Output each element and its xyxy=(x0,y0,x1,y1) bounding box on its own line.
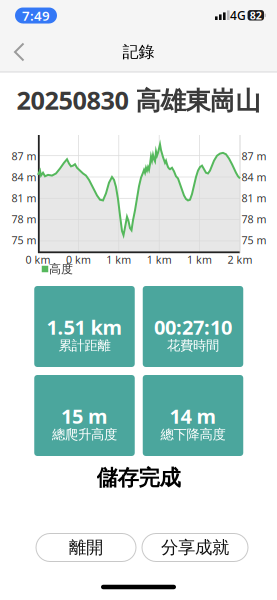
staticText: 2 km xyxy=(227,252,252,267)
button[interactable]: Back xyxy=(7,40,31,64)
staticText: 離開 xyxy=(69,537,103,558)
staticText: 0 km xyxy=(25,252,50,267)
staticText: 78 m xyxy=(11,212,36,226)
button[interactable]: 分享成就 xyxy=(142,533,248,561)
staticText: 4G xyxy=(230,7,246,23)
staticText: 1 km xyxy=(187,252,212,267)
staticText: 1 km xyxy=(147,252,172,267)
staticText: 記錄 xyxy=(122,42,154,62)
staticText: 82 xyxy=(250,8,262,22)
staticText: 1 km xyxy=(106,252,131,267)
staticText: 分享成就 xyxy=(161,537,229,558)
staticText: 87 m xyxy=(241,149,266,163)
button[interactable]: 離開 xyxy=(36,533,136,561)
staticText: 高度 xyxy=(49,262,73,276)
staticText: 00:27:10 xyxy=(154,314,232,340)
staticText: 儲存完成 xyxy=(96,465,180,491)
staticText: 花費時間 xyxy=(167,337,219,354)
staticText: 總爬升高度 xyxy=(52,426,117,443)
staticText: 15 m xyxy=(61,403,108,429)
staticText: 7:49 xyxy=(22,7,50,24)
staticText: 84 m xyxy=(241,170,266,184)
staticText: 81 m xyxy=(11,191,36,205)
staticText: 87 m xyxy=(11,149,36,163)
staticText: 84 m xyxy=(11,170,36,184)
staticText: 78 m xyxy=(241,212,266,226)
staticText: 75 m xyxy=(241,233,266,247)
staticText: 累計距離 xyxy=(58,337,110,354)
button[interactable]: Return to app xyxy=(15,7,57,23)
staticText: 14 m xyxy=(169,403,216,429)
staticText: 81 m xyxy=(241,191,266,205)
staticText: 75 m xyxy=(11,233,36,247)
staticText: 1.51 km xyxy=(46,314,122,340)
staticText: 20250830 高雄東崗山 xyxy=(16,83,260,117)
staticText: 總下降高度 xyxy=(160,426,225,443)
staticText: 0 km xyxy=(66,252,91,267)
